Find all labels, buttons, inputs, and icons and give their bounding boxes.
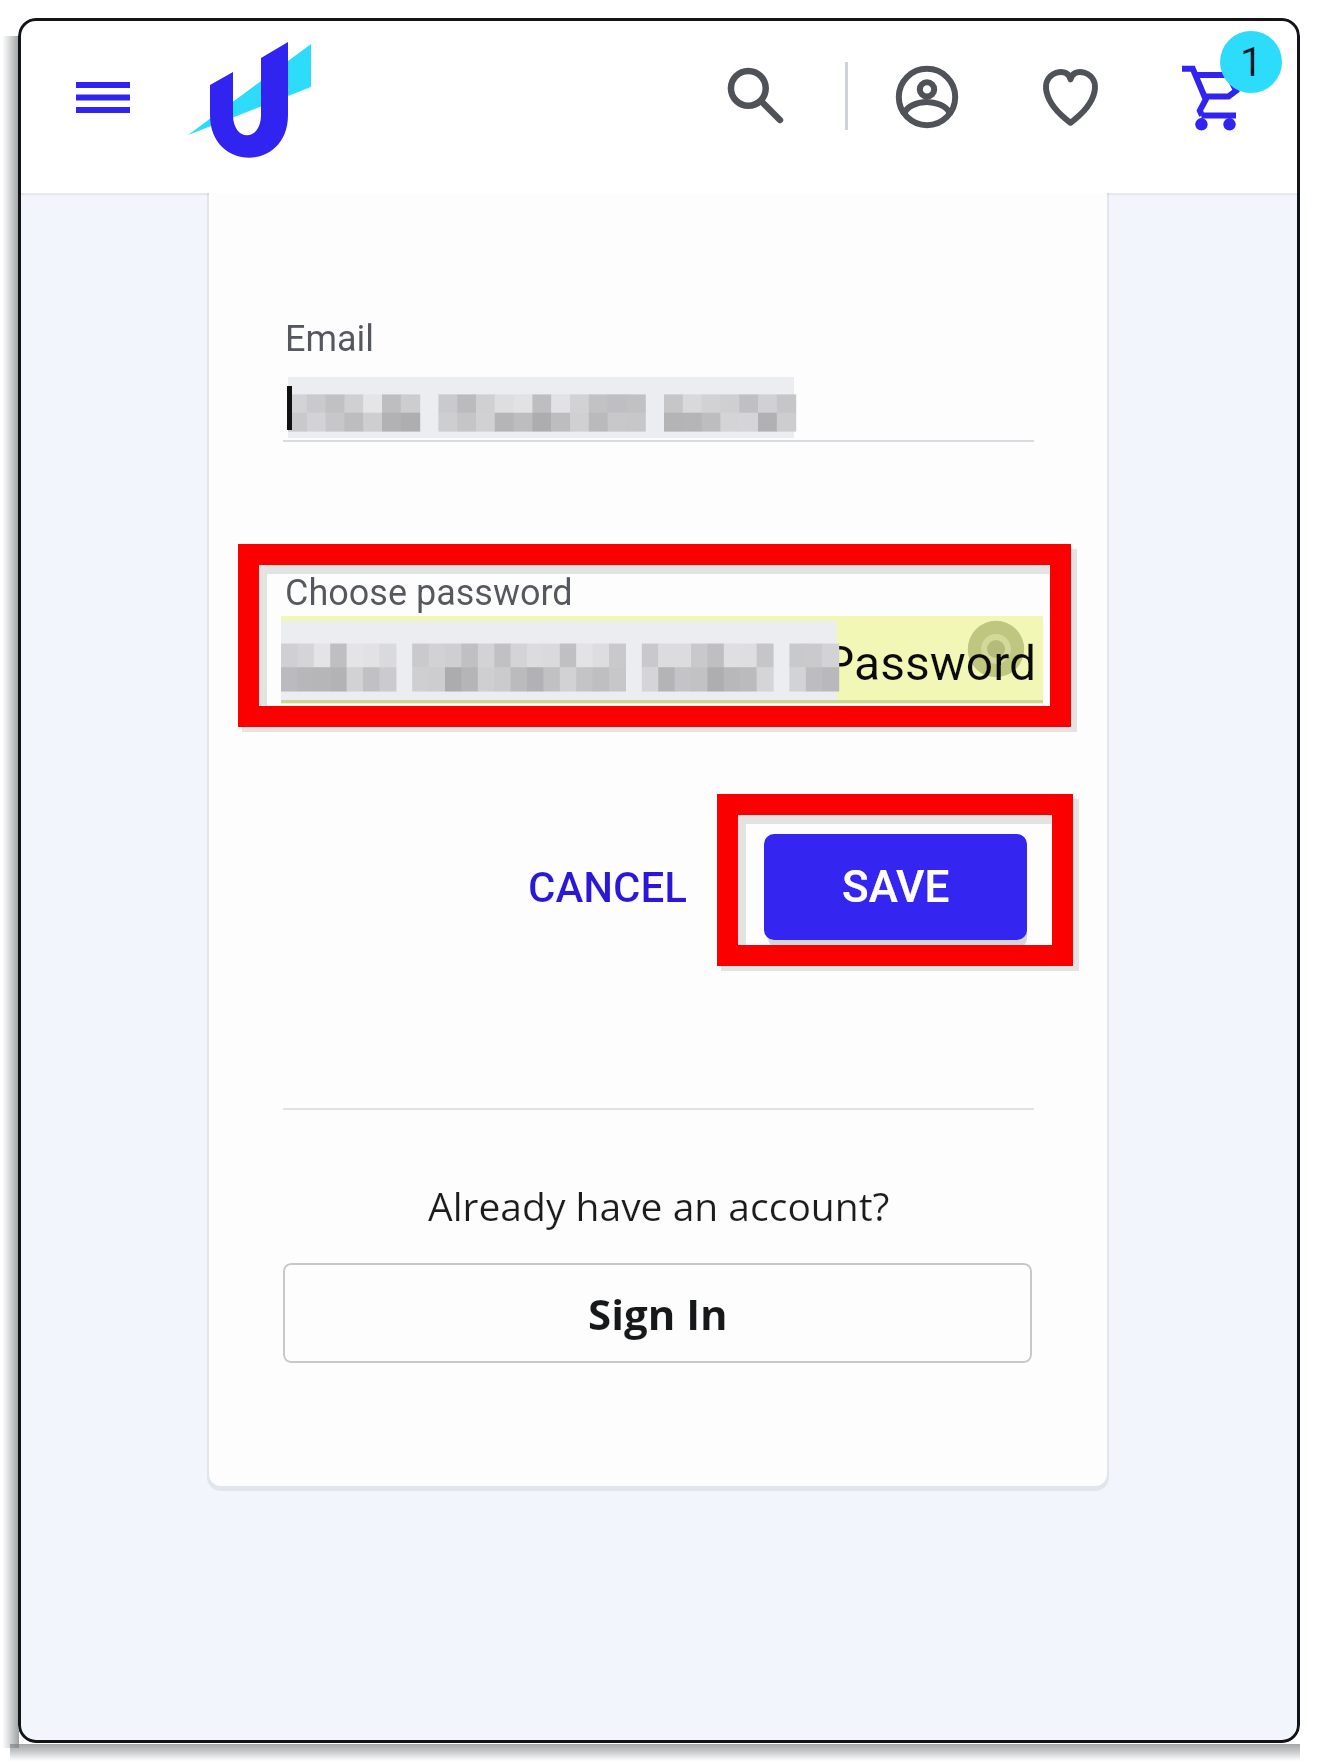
staticText: Sign In [588,1285,728,1342]
staticText: Choose password [285,572,573,614]
button[interactable]: Shopping cart [1157,45,1261,149]
staticText: 1 [1240,39,1263,86]
button[interactable]: Open navigation menu [56,60,150,134]
staticText: CANCEL [528,863,687,912]
staticText: Already have an account? [428,1179,890,1232]
button[interactable]: Show password [966,619,1026,679]
button[interactable]: Account [875,45,979,149]
button[interactable]: 1 item in cart [1220,31,1282,93]
button[interactable]: CANCEL [498,834,717,940]
staticText: Password [824,635,1037,691]
button[interactable]: Home [180,30,320,170]
button[interactable]: SAVE [764,834,1027,940]
button[interactable]: Email [285,318,375,360]
button[interactable]: Search [703,43,807,147]
button[interactable]: Wishlist [1018,45,1122,149]
button[interactable]: Sign In [283,1263,1032,1363]
staticText: SAVE [842,861,950,913]
button[interactable]: Choose password [285,572,573,614]
staticText: Email [285,318,375,360]
